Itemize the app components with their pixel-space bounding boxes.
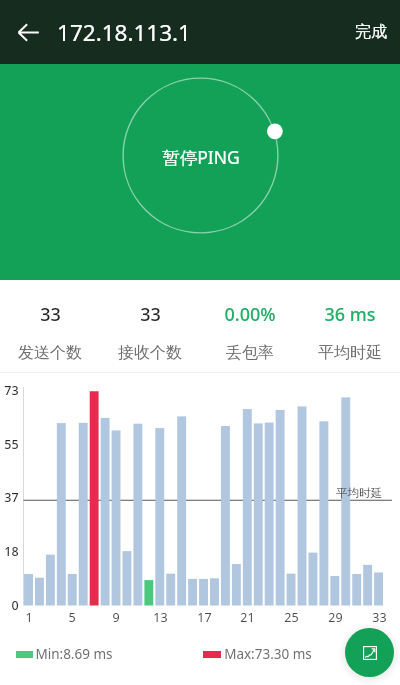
staticText: 21 xyxy=(240,609,255,626)
staticText: 丢包率 xyxy=(226,343,274,363)
staticText: 5 xyxy=(68,609,76,626)
button[interactable]: 36 ms xyxy=(300,281,400,373)
button[interactable]: Show chart xyxy=(345,628,394,677)
staticText: 1 xyxy=(25,609,33,626)
staticText: 18 xyxy=(4,543,19,560)
staticText: 33 xyxy=(372,609,387,626)
staticText: 完成 xyxy=(355,22,387,42)
staticText: 36 ms xyxy=(324,302,376,327)
button[interactable]: 33 xyxy=(0,281,100,373)
staticText: 暂停PING xyxy=(162,145,240,169)
button[interactable]: 完成 xyxy=(339,10,400,54)
staticText: 37 xyxy=(4,489,19,506)
staticText: 33 xyxy=(140,302,161,327)
staticText: Max:73.30 ms xyxy=(224,645,312,663)
staticText: 17 xyxy=(197,609,212,626)
staticText: 平均时延 xyxy=(318,343,382,363)
staticText: 发送个数 xyxy=(18,343,82,363)
staticText: 73 xyxy=(4,382,19,399)
button[interactable]: Back xyxy=(7,11,49,53)
staticText: 接收个数 xyxy=(118,343,182,363)
staticText: 13 xyxy=(153,609,168,626)
staticText: 9 xyxy=(112,609,120,626)
staticText: 0.00% xyxy=(224,302,276,327)
staticText: 172.18.113.1 xyxy=(57,17,191,48)
button[interactable]: 0.00% xyxy=(200,281,300,373)
staticText: 0 xyxy=(11,597,19,614)
staticText: 25 xyxy=(284,609,299,626)
staticText: 29 xyxy=(328,609,343,626)
button[interactable]: 33 xyxy=(100,281,200,373)
button[interactable]: 暂停PING xyxy=(122,77,279,234)
staticText: 33 xyxy=(40,302,61,327)
staticText: 55 xyxy=(4,436,19,453)
staticText: Min:8.69 ms xyxy=(35,645,113,663)
staticText: 平均时延 xyxy=(336,486,382,500)
